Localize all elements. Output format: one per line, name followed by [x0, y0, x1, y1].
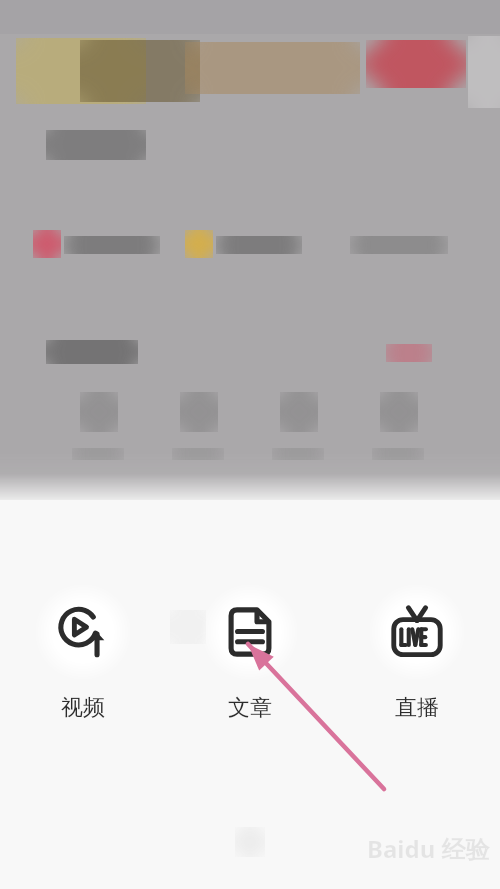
staticText: Baidu 经验 — [367, 832, 490, 865]
button[interactable]: Go live — [333, 582, 500, 722]
staticText: 视频 — [61, 694, 105, 722]
staticText: 文章 — [228, 694, 272, 722]
staticText: 直播 — [395, 694, 439, 722]
button[interactable]: Write article — [166, 582, 333, 722]
button[interactable]: Upload video — [0, 582, 166, 722]
